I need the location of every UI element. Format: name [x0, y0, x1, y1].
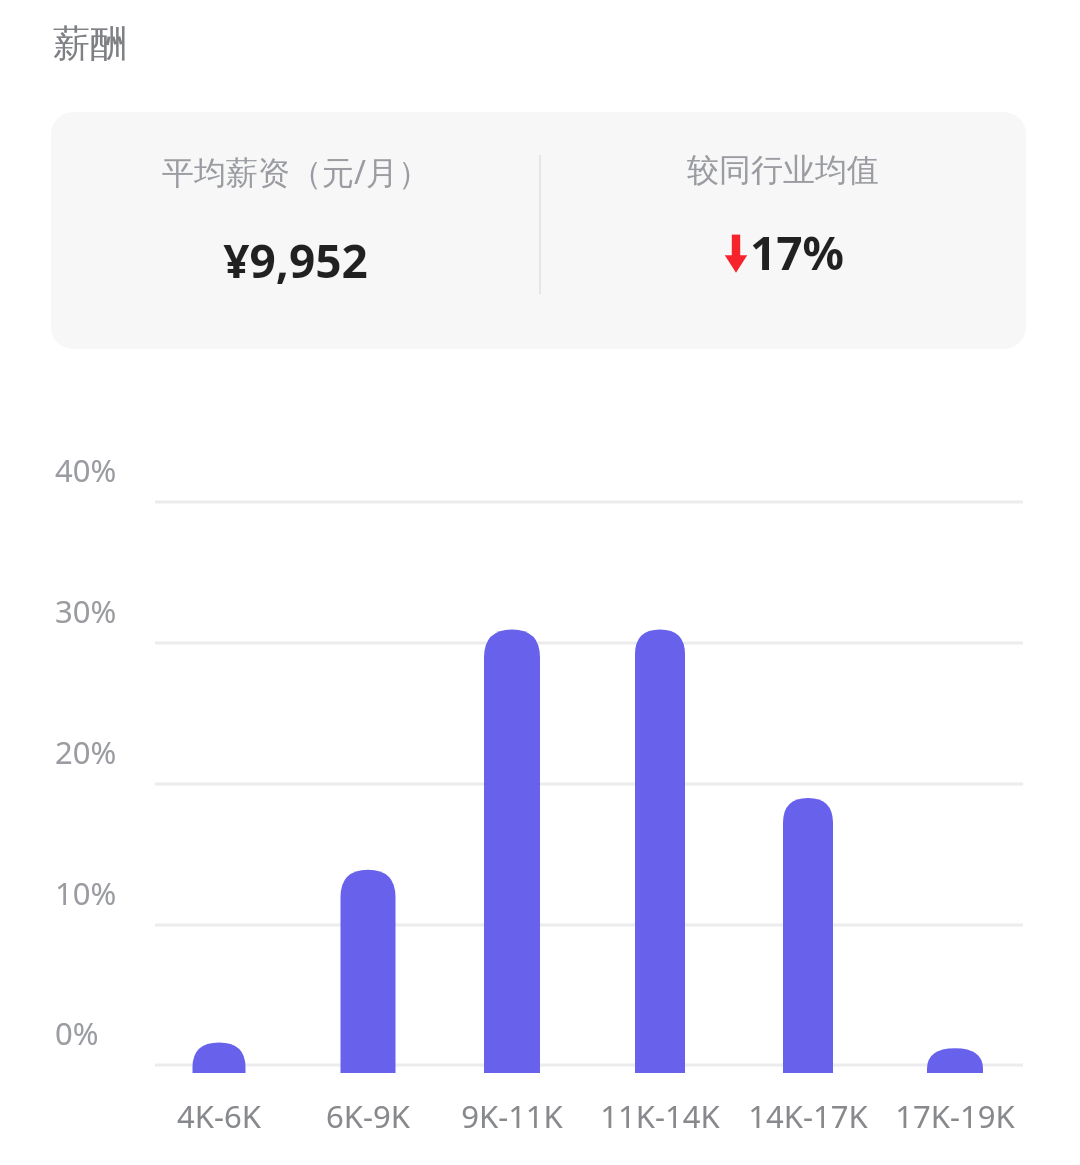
staticText: 14K-17K	[748, 1095, 868, 1137]
staticText: 20%	[55, 731, 117, 773]
staticText: 40%	[55, 449, 117, 491]
staticText: 30%	[55, 590, 117, 632]
button[interactable]: 9K-11K	[422, 1092, 602, 1140]
staticText: 6K-9K	[326, 1095, 410, 1137]
button[interactable]: 14K-17K	[718, 1092, 898, 1140]
staticText: 0%	[55, 1012, 99, 1054]
button[interactable]: 17K-19K	[865, 1092, 1045, 1140]
staticText: 薪酬	[53, 20, 127, 67]
button[interactable]: 11K-14K	[570, 1092, 750, 1140]
staticText: 17%	[750, 221, 845, 284]
staticText: 平均薪资（元/月）	[162, 150, 430, 194]
button[interactable]: 平均薪资（元/月）	[51, 112, 1026, 349]
staticText: ¥9,952	[223, 229, 368, 292]
staticText: 4K-6K	[177, 1095, 261, 1137]
button[interactable]: 4K-6K	[129, 1092, 309, 1140]
staticText: 9K-11K	[461, 1095, 563, 1137]
other: Below industry average	[722, 230, 750, 276]
staticText: 10%	[55, 872, 117, 914]
button[interactable]: 6K-9K	[278, 1092, 458, 1140]
button[interactable]: 薪酬	[53, 20, 127, 67]
staticText: 17K-19K	[895, 1095, 1015, 1137]
staticText: 较同行业均值	[687, 150, 879, 190]
staticText: 11K-14K	[600, 1095, 720, 1137]
